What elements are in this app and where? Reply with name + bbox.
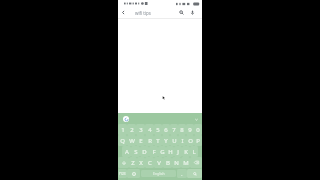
- button[interactable]: Back: [118, 7, 129, 18]
- button[interactable]: I: [178, 135, 186, 146]
- button[interactable]: Google: [123, 116, 129, 122]
- button[interactable]: M: [181, 157, 190, 168]
- staticText: wifi tips: [135, 10, 151, 16]
- staticText: 2: [130, 126, 134, 134]
- button[interactable]: 8: [178, 124, 186, 135]
- staticText: 4: [148, 126, 152, 134]
- staticText: V: [157, 159, 161, 167]
- staticText: B: [166, 159, 170, 167]
- staticText: K: [184, 148, 188, 156]
- staticText: G: [160, 148, 165, 156]
- staticText: A: [125, 148, 129, 156]
- button[interactable]: 2: [127, 124, 136, 135]
- button[interactable]: N: [172, 157, 181, 168]
- button[interactable]: S: [131, 146, 140, 157]
- staticText: O: [188, 137, 193, 145]
- button[interactable]: Q: [118, 135, 127, 146]
- button[interactable]: F: [149, 146, 158, 157]
- button[interactable]: O: [186, 135, 194, 146]
- staticText: Q: [120, 137, 125, 145]
- button[interactable]: 4: [145, 124, 154, 135]
- staticText: Z: [131, 159, 135, 167]
- staticText: P: [196, 137, 200, 145]
- staticText: 3: [139, 126, 143, 134]
- staticText: F: [152, 148, 156, 156]
- staticText: S: [134, 148, 138, 156]
- button[interactable]: .: [177, 169, 187, 178]
- button[interactable]: Voice search: [187, 7, 198, 18]
- staticText: N: [174, 159, 179, 167]
- staticText: 0: [196, 126, 200, 134]
- button[interactable]: Emoji: [127, 169, 140, 178]
- button[interactable]: 9: [186, 124, 194, 135]
- button[interactable]: Backspace: [190, 157, 202, 168]
- button[interactable]: C: [145, 157, 154, 168]
- button[interactable]: Space: [141, 170, 176, 177]
- button[interactable]: Y: [162, 135, 170, 146]
- staticText: E: [139, 137, 143, 145]
- button[interactable]: 1: [118, 124, 127, 135]
- staticText: J: [177, 148, 179, 156]
- button[interactable]: A: [122, 146, 131, 157]
- button[interactable]: 7: [170, 124, 178, 135]
- button[interactable]: ?123: [118, 169, 127, 178]
- button[interactable]: X: [137, 157, 145, 168]
- staticText: 9: [188, 126, 192, 134]
- button[interactable]: D: [140, 146, 149, 157]
- button[interactable]: K: [182, 146, 190, 157]
- button[interactable]: V: [154, 157, 163, 168]
- button[interactable]: T: [154, 135, 162, 146]
- button[interactable]: P: [194, 135, 202, 146]
- button[interactable]: 6: [162, 124, 170, 135]
- button[interactable]: W: [127, 135, 136, 146]
- staticText: 7: [172, 126, 176, 134]
- staticText: R: [148, 137, 152, 145]
- button[interactable]: G: [158, 146, 166, 157]
- button[interactable]: B: [163, 157, 172, 168]
- button[interactable]: Search: [176, 7, 187, 18]
- staticText: ?123: [119, 172, 126, 176]
- staticText: U: [172, 137, 177, 145]
- staticText: 8: [180, 126, 184, 134]
- staticText: X: [139, 159, 143, 167]
- staticText: .: [181, 170, 183, 178]
- button[interactable]: 3: [136, 124, 145, 135]
- staticText: H: [168, 148, 173, 156]
- button[interactable]: J: [174, 146, 182, 157]
- staticText: T: [156, 137, 160, 145]
- button[interactable]: H: [166, 146, 174, 157]
- staticText: English: [153, 171, 165, 176]
- button[interactable]: Z: [129, 157, 137, 168]
- staticText: W: [129, 137, 135, 145]
- button[interactable]: Shift: [118, 157, 129, 168]
- staticText: 6: [164, 126, 168, 134]
- button[interactable]: More options: [193, 116, 199, 122]
- button[interactable]: 0: [194, 124, 202, 135]
- staticText: M: [183, 159, 189, 167]
- staticText: 1: [121, 126, 125, 134]
- staticText: D: [142, 148, 147, 156]
- button[interactable]: U: [170, 135, 178, 146]
- button[interactable]: R: [145, 135, 154, 146]
- button[interactable]: L: [190, 146, 198, 157]
- button[interactable]: 5: [154, 124, 162, 135]
- button[interactable]: E: [136, 135, 145, 146]
- staticText: Y: [164, 137, 168, 145]
- staticText: L: [192, 148, 196, 156]
- button[interactable]: Search: [187, 169, 202, 178]
- staticText: C: [148, 159, 152, 167]
- staticText: I: [181, 137, 184, 145]
- staticText: 5: [156, 126, 160, 134]
